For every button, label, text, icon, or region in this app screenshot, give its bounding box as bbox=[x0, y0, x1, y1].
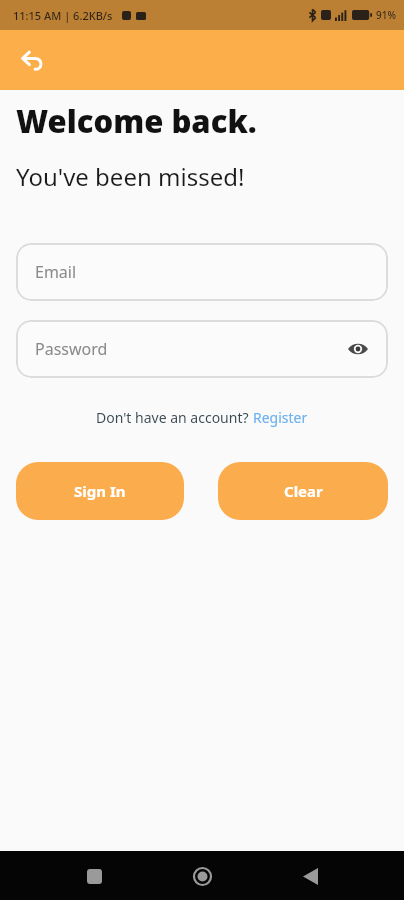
staticText: You've been missed! bbox=[16, 160, 245, 193]
button[interactable]: Back bbox=[288, 854, 332, 898]
button[interactable]: Show password bbox=[340, 331, 376, 367]
staticText: Email bbox=[35, 261, 77, 283]
staticText: Don't have an account? bbox=[96, 408, 253, 427]
staticText: 11:15 AM | 6.2KB/s bbox=[13, 8, 113, 23]
staticText: Password bbox=[35, 338, 108, 360]
button[interactable]: Clear bbox=[218, 462, 388, 520]
button[interactable]: Sign In bbox=[16, 462, 184, 520]
staticText: Welcome back. bbox=[16, 100, 257, 142]
staticText: 91% bbox=[376, 8, 396, 22]
button[interactable]: Email bbox=[16, 243, 388, 301]
button[interactable]: Password bbox=[16, 320, 388, 378]
staticText: Sign In bbox=[74, 481, 126, 501]
staticText: Register bbox=[253, 408, 308, 427]
button[interactable]: Home bbox=[180, 854, 224, 898]
button[interactable]: Register bbox=[253, 408, 308, 427]
button[interactable]: Recent apps bbox=[72, 854, 116, 898]
button[interactable]: Back bbox=[8, 36, 56, 84]
staticText: Clear bbox=[284, 481, 323, 501]
